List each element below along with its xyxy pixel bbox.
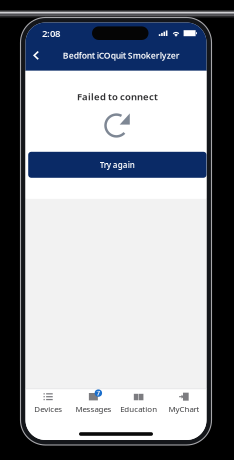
- staticText: 7: [96, 389, 100, 397]
- button[interactable]: Devices: [25, 389, 71, 417]
- button[interactable]: Education: [116, 389, 161, 417]
- staticText: Try again: [100, 159, 135, 170]
- button[interactable]: Back: [25, 46, 46, 65]
- staticText: Failed to connect: [77, 90, 158, 103]
- staticText: Messages: [75, 403, 111, 414]
- staticText: Bedfont iCOquit Smokerlyzer: [63, 49, 180, 61]
- staticText: Devices: [34, 403, 62, 414]
- button[interactable]: 7: [71, 389, 116, 417]
- staticText: 2:08: [42, 27, 60, 40]
- staticText: Education: [120, 403, 157, 414]
- button[interactable]: MyChart: [161, 389, 206, 417]
- button[interactable]: Try again: [28, 152, 206, 178]
- staticText: MyChart: [168, 403, 199, 414]
